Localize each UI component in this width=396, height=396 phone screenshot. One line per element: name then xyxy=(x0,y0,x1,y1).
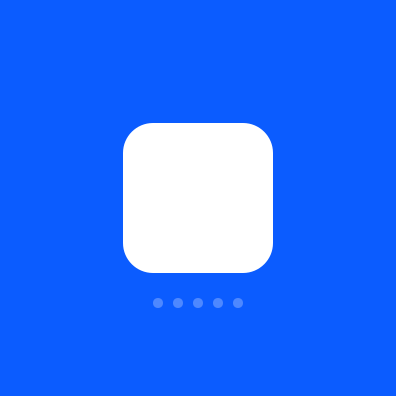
button[interactable]: Page indicator xyxy=(153,298,243,308)
button[interactable]: App icon xyxy=(123,123,273,273)
